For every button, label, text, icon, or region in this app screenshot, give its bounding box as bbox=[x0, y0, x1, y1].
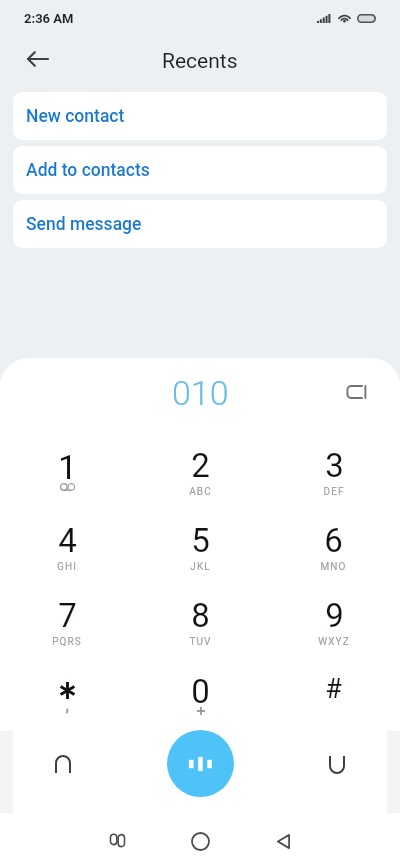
button[interactable]: Hide keypad bbox=[293, 731, 381, 798]
staticText: WXYZ bbox=[318, 636, 350, 648]
button[interactable]: Backspace bbox=[337, 373, 375, 411]
button[interactable]: 3 bbox=[267, 430, 400, 505]
button[interactable]: 2 bbox=[134, 430, 267, 505]
button[interactable]: Send message bbox=[13, 200, 387, 248]
button[interactable]: # bbox=[267, 655, 400, 730]
staticText: 9 bbox=[325, 596, 344, 635]
staticText: 5 bbox=[191, 521, 210, 560]
button[interactable]: 1 bbox=[0, 430, 134, 505]
staticText: Send message bbox=[26, 214, 142, 235]
button[interactable]: 0 bbox=[134, 655, 267, 730]
staticText: DEF bbox=[323, 486, 345, 498]
staticText: TUV bbox=[189, 636, 212, 648]
button[interactable]: Back bbox=[253, 816, 313, 866]
staticText: 2:36 AM bbox=[24, 11, 74, 26]
button[interactable]: Add to contacts bbox=[13, 146, 387, 194]
staticText: 1 bbox=[58, 448, 77, 487]
staticText: MNO bbox=[320, 561, 347, 573]
button[interactable]: 9 bbox=[267, 580, 400, 655]
button[interactable]: Call bbox=[167, 730, 234, 797]
staticText: ABC bbox=[189, 486, 212, 498]
button[interactable] bbox=[0, 655, 134, 730]
button[interactable]: 8 bbox=[134, 580, 267, 655]
staticText: # bbox=[325, 673, 342, 705]
button[interactable]: New contact bbox=[13, 92, 387, 140]
staticText: 4 bbox=[58, 521, 77, 560]
button[interactable]: Add contact bbox=[19, 731, 107, 798]
staticText: Add to contacts bbox=[26, 160, 150, 181]
staticText: 3 bbox=[325, 446, 344, 485]
staticText: New contact bbox=[26, 106, 125, 127]
button[interactable]: Recent apps bbox=[87, 816, 147, 866]
staticText: PQRS bbox=[52, 636, 82, 648]
staticText: Recents bbox=[162, 49, 238, 74]
button[interactable]: 5 bbox=[134, 505, 267, 580]
staticText: 7 bbox=[58, 596, 77, 635]
button[interactable]: 4 bbox=[0, 505, 134, 580]
button[interactable]: 6 bbox=[267, 505, 400, 580]
button[interactable]: 7 bbox=[0, 580, 134, 655]
staticText: GHI bbox=[57, 561, 77, 573]
button[interactable]: Back bbox=[16, 37, 60, 81]
staticText: 6 bbox=[324, 521, 343, 560]
staticText: 0 bbox=[191, 672, 210, 711]
staticText: 8 bbox=[191, 596, 210, 635]
staticText: 2 bbox=[191, 446, 210, 485]
button[interactable]: Home bbox=[170, 816, 230, 866]
staticText: JKL bbox=[190, 561, 211, 573]
staticText: 010 bbox=[172, 373, 229, 413]
